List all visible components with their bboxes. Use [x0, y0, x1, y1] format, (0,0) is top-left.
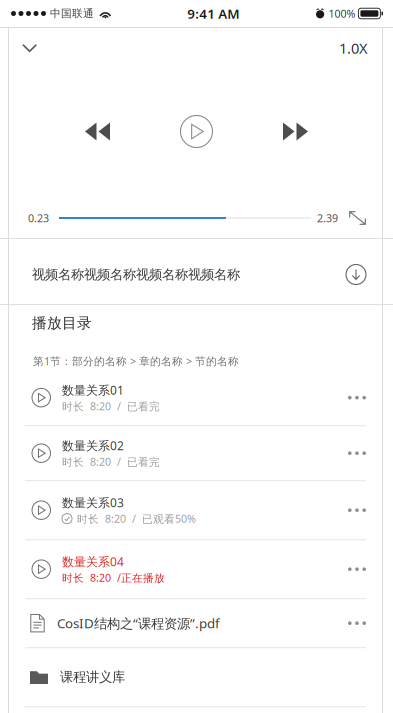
- staticText: 播放目录: [32, 314, 92, 332]
- button[interactable]: Rewind: [74, 111, 121, 151]
- button[interactable]: 课程讲义库: [0, 648, 393, 706]
- staticText: 0.23: [28, 211, 49, 225]
- staticText: 课程讲义库: [60, 669, 125, 685]
- button[interactable]: Fast forward: [272, 111, 319, 151]
- staticText: 数量关系03: [62, 495, 124, 510]
- button[interactable]: Collapse: [8, 35, 51, 61]
- staticText: 时长 8:20 /正在播放: [62, 571, 165, 585]
- staticText: 时长 8:20 / 已看完: [62, 455, 160, 469]
- button[interactable]: Play: [172, 107, 220, 155]
- staticText: 2.39: [317, 211, 338, 225]
- staticText: CosID结构之“课程资源”.pdf: [57, 614, 220, 632]
- staticText: 时长 8:20 / 已看完: [62, 399, 160, 413]
- staticText: 时长 8:20 / 已观看50%: [77, 512, 196, 526]
- button[interactable]: Full screen: [338, 206, 370, 230]
- staticText: 数量关系01: [62, 382, 124, 398]
- staticText: 9:41 AM: [187, 5, 239, 22]
- button[interactable]: 数量关系01: [0, 370, 393, 425]
- button[interactable]: 1.0X: [329, 31, 378, 65]
- button[interactable]: 数量关系02: [0, 426, 393, 480]
- staticText: 视频名称视频名称视频名称视频名称: [32, 266, 240, 283]
- staticText: 1.0X: [339, 38, 368, 58]
- button[interactable]: 数量关系03: [0, 481, 393, 539]
- staticText: 中国联通: [50, 7, 94, 20]
- staticText: 数量关系02: [62, 438, 124, 453]
- button[interactable]: CosID结构之“课程资源”.pdf: [0, 599, 393, 647]
- button[interactable]: 视频名称视频名称视频名称视频名称: [0, 239, 393, 304]
- button[interactable]: 数量关系04: [0, 540, 393, 598]
- staticText: 100%: [328, 6, 355, 21]
- staticText: 数量关系04: [62, 554, 124, 569]
- staticText: 第1节：部分的名称 > 章的名称 > 节的名称: [33, 354, 239, 368]
